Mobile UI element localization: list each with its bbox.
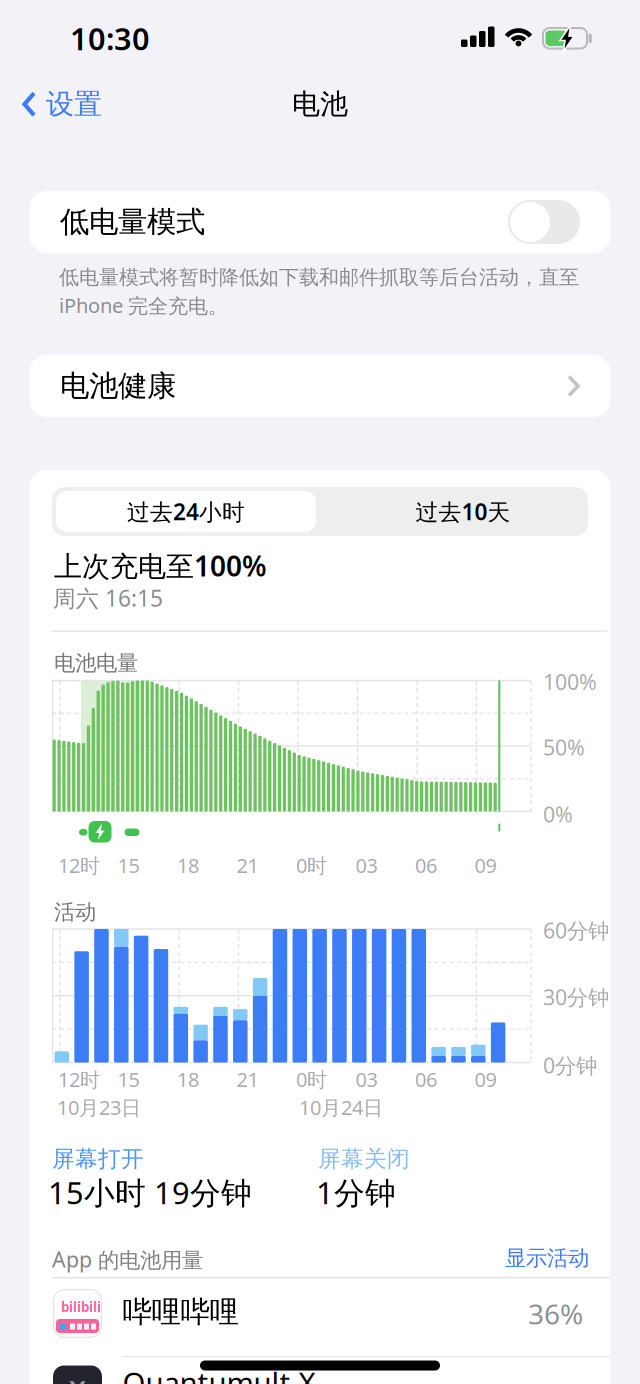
staticText: 1分钟 — [316, 1172, 396, 1213]
staticText: 上次充电至100% — [54, 547, 267, 584]
staticText: X — [69, 1372, 86, 1384]
staticText: 12时 — [58, 1066, 100, 1093]
staticText: 低电量模式 — [60, 204, 205, 240]
staticText: 09 — [474, 852, 496, 879]
staticText: 屏幕打开 — [52, 1145, 144, 1173]
staticText: 50% — [543, 733, 585, 761]
staticText: 06 — [415, 852, 437, 879]
staticText: 10月24日 — [299, 1094, 383, 1121]
button[interactable]: 过去10天 — [333, 491, 593, 532]
staticText: 显示活动 — [505, 1245, 589, 1271]
staticText: iPhone 完全充电。 — [59, 292, 228, 319]
staticText: 36% — [528, 1295, 583, 1332]
staticText: 活动 — [54, 899, 96, 925]
staticText: bilibili — [61, 1298, 101, 1316]
staticText: 周六 16:15 — [53, 583, 163, 613]
staticText: 18 — [177, 852, 199, 879]
staticText: 0分钟 — [543, 1051, 597, 1079]
staticText: 21 — [236, 852, 258, 879]
staticText: App 的电池用量 — [52, 1245, 203, 1273]
staticText: 09 — [474, 1066, 496, 1093]
staticText: Quantumult X — [122, 1363, 315, 1384]
button[interactable]: 显示活动 — [505, 1245, 589, 1271]
staticText: 低电量模式将暂时降低如下载和邮件抓取等后台活动，直至 — [59, 265, 579, 290]
staticText: 18 — [177, 1066, 199, 1093]
staticText: 60分钟 — [543, 916, 609, 944]
button[interactable]: 返回设置 — [22, 87, 102, 121]
staticText: 30分钟 — [543, 983, 609, 1011]
staticText: 15 — [117, 1066, 139, 1093]
button[interactable]: 过去24小时 — [56, 491, 316, 532]
staticText: 哔哩哔哩 — [122, 1294, 238, 1330]
staticText: 0时 — [296, 1066, 327, 1093]
button[interactable]: X — [52, 1357, 610, 1384]
staticText: 100% — [543, 667, 597, 696]
staticText: 电池电量 — [54, 650, 138, 676]
staticText: 屏幕关闭 — [318, 1145, 410, 1173]
staticText: 设置 — [46, 87, 102, 121]
staticText: 0% — [543, 800, 573, 828]
staticText: 12时 — [58, 852, 100, 879]
staticText: 06 — [415, 1066, 437, 1093]
staticText: 电池 — [292, 87, 348, 121]
staticText: 0时 — [296, 852, 327, 879]
staticText: 电池健康 — [60, 368, 176, 404]
staticText: 15小时 19分钟 — [48, 1172, 252, 1213]
button[interactable]: 低电量模式开关 — [508, 200, 580, 244]
staticText: 21 — [236, 1066, 258, 1093]
staticText: 过去24小时 — [127, 496, 245, 526]
staticText: 10:30 — [70, 18, 150, 59]
button[interactable]: 电池健康 — [30, 355, 610, 417]
staticText: 10月23日 — [57, 1094, 141, 1121]
button[interactable]: bilibili — [52, 1279, 610, 1356]
staticText: 03 — [355, 852, 377, 879]
staticText: 15 — [117, 852, 139, 879]
staticText: 03 — [355, 1066, 377, 1093]
staticText: 过去10天 — [415, 496, 510, 526]
